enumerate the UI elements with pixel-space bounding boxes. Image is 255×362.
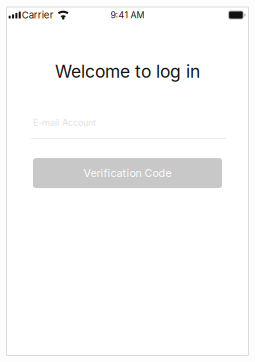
button[interactable]: Verification Code (33, 158, 222, 188)
staticText: Carrier (22, 9, 54, 21)
staticText: E-mail Account (33, 117, 96, 128)
staticText: Welcome to log in (55, 61, 200, 82)
staticText: 9:41 AM (110, 10, 144, 20)
staticText: Verification Code (83, 166, 171, 180)
